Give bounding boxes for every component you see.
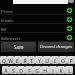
button[interactable]: Add: [66, 16, 73, 23]
staticText: (: [71, 66, 72, 69]
staticText: E: [16, 58, 19, 64]
staticText: %: [30, 66, 32, 69]
staticText: 1: [4, 56, 6, 59]
staticText: Phone: [1, 9, 14, 14]
staticText: W: [8, 58, 13, 64]
staticText: H: [43, 68, 47, 74]
staticText: O: [61, 58, 65, 64]
button[interactable]: Discard changes: [38, 42, 74, 52]
staticText: J: [52, 68, 54, 74]
staticText: -: [55, 66, 56, 69]
button[interactable]: $: [17, 66, 25, 74]
staticText: 2: [11, 56, 13, 59]
staticText: 9: [64, 56, 66, 59]
staticText: 4: [25, 56, 27, 59]
button[interactable]: 3: [14, 56, 21, 64]
staticText: P: [69, 58, 73, 64]
button[interactable]: Addresses: [0, 33, 75, 42]
button[interactable]: 1: [0, 56, 7, 64]
staticText: 7: [48, 56, 50, 59]
button[interactable]: Add: [66, 25, 73, 32]
staticText: $: [22, 66, 24, 69]
button[interactable]: Add: [66, 7, 73, 14]
staticText: 8: [56, 56, 58, 59]
button[interactable]: +: [57, 66, 65, 74]
button[interactable]: *: [41, 66, 49, 74]
button[interactable]: @: [2, 66, 9, 74]
button[interactable]: #: [9, 66, 17, 74]
staticText: +: [62, 66, 64, 69]
staticText: *: [46, 66, 48, 69]
staticText: #: [14, 66, 16, 69]
staticText: 5: [32, 56, 34, 59]
button[interactable]: 5: [28, 56, 35, 64]
button[interactable]: IM: [0, 24, 75, 33]
staticText: &: [38, 66, 40, 69]
staticText: S: [12, 68, 15, 74]
button[interactable]: Save: [1, 42, 36, 52]
staticText: F: [28, 68, 31, 74]
staticText: K: [59, 68, 63, 74]
staticText: G: [35, 68, 39, 74]
staticText: Q: [2, 58, 6, 64]
staticText: A: [4, 68, 8, 74]
staticText: Save: [14, 44, 24, 50]
staticText: 0: [72, 56, 74, 59]
staticText: Emails: [1, 18, 14, 23]
button[interactable]: Add: [66, 34, 73, 41]
staticText: R: [23, 58, 27, 64]
button[interactable]: 2: [7, 56, 14, 64]
button[interactable]: &: [33, 66, 41, 74]
staticText: @: [5, 66, 8, 69]
staticText: Discard changes: [40, 44, 73, 50]
staticText: Addresses: [1, 36, 21, 41]
staticText: Y: [38, 58, 41, 64]
button[interactable]: 8: [51, 56, 59, 64]
button[interactable]: 6: [35, 56, 43, 64]
staticText: D: [19, 68, 23, 74]
staticText: T: [30, 58, 33, 64]
staticText: U: [45, 58, 49, 64]
button[interactable]: 4: [21, 56, 28, 64]
staticText: L: [68, 68, 71, 74]
staticText: IM: [1, 27, 6, 32]
button[interactable]: Phone: [0, 6, 75, 15]
button[interactable]: 9: [59, 56, 67, 64]
button[interactable]: %: [25, 66, 33, 74]
button[interactable]: 0: [67, 56, 75, 64]
button[interactable]: (: [65, 66, 73, 74]
staticText: 3: [18, 56, 20, 59]
button[interactable]: -: [49, 66, 57, 74]
button[interactable]: Delete field: [68, 0, 74, 3]
staticText: 6: [40, 56, 42, 59]
button[interactable]: Emails: [0, 15, 75, 24]
button[interactable]: 7: [43, 56, 51, 64]
staticText: I: [54, 58, 56, 64]
